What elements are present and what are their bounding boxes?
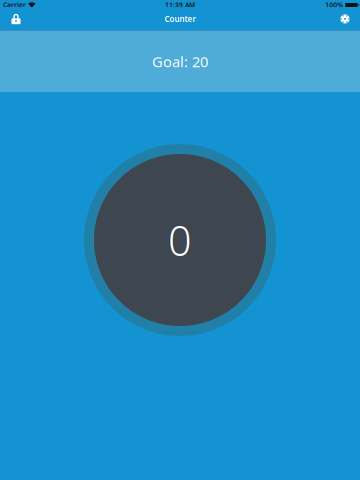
staticText: 100% <box>325 1 343 9</box>
button[interactable]: Lock <box>5 13 27 25</box>
staticText: Counter <box>164 14 195 24</box>
staticText: 11:39 AM <box>165 1 195 9</box>
staticText: Goal: 20 <box>152 52 208 71</box>
staticText: 0 <box>168 213 192 267</box>
button[interactable]: Increment counter <box>84 144 276 336</box>
button[interactable]: Settings <box>334 13 356 25</box>
staticText: Carrier <box>3 1 26 9</box>
